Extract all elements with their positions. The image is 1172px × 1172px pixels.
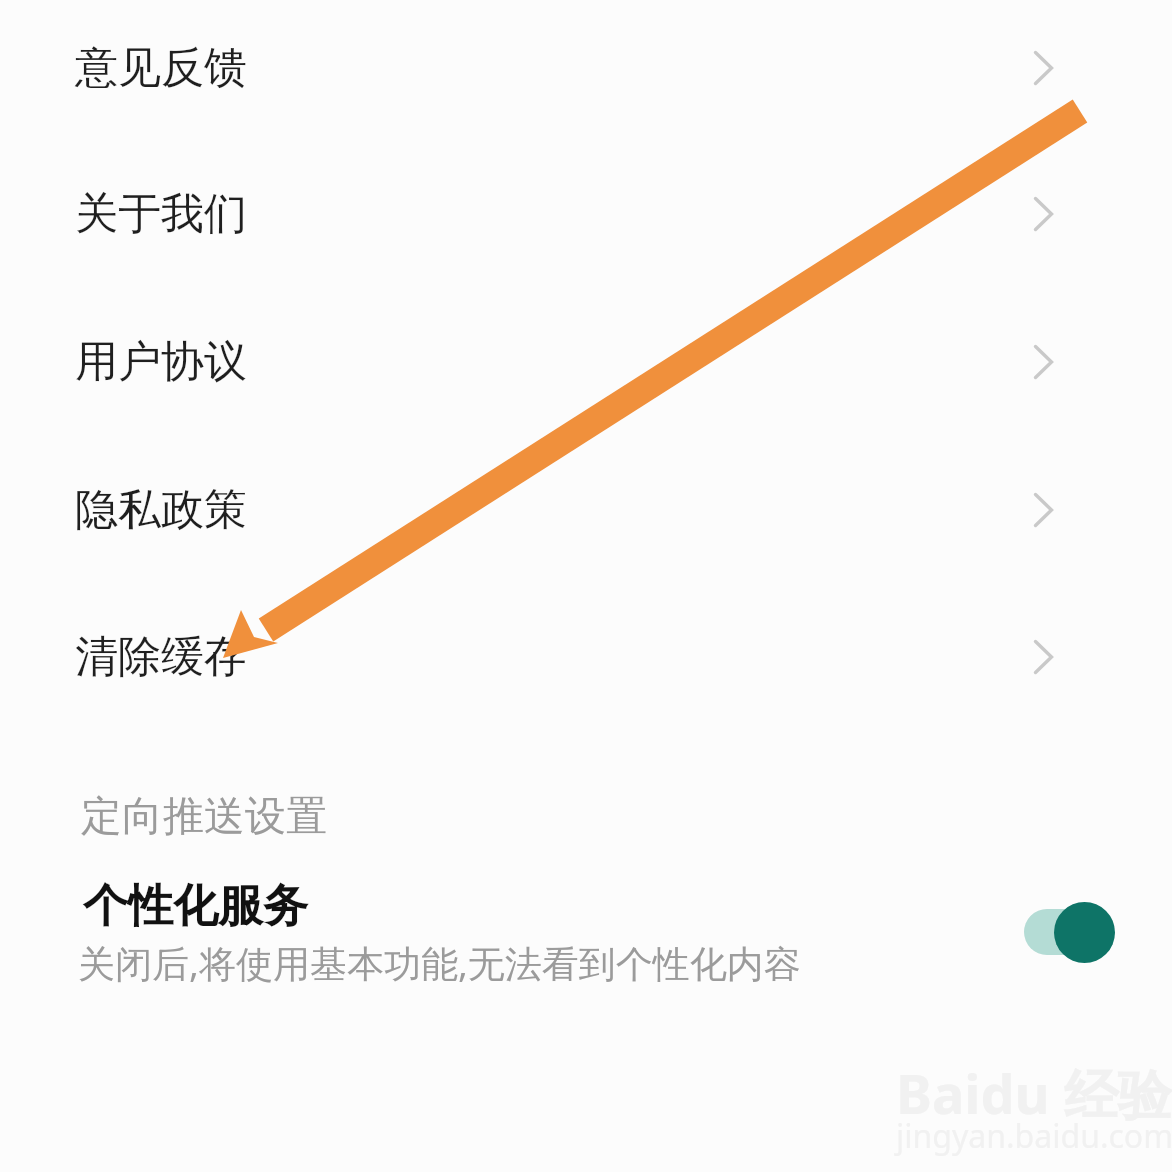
staticText: 隐私政策 [75, 483, 247, 537]
staticText: 个性化服务 [83, 878, 308, 935]
staticText: 关于我们 [75, 187, 247, 241]
staticText: 用户协议 [75, 335, 247, 389]
staticText: Baidu 经验 [896, 1056, 1172, 1130]
staticText: 关闭后,将使用基本功能,无法看到个性化内容 [78, 937, 801, 988]
button[interactable]: 个性化服务 [0, 862, 1172, 1002]
button[interactable]: 用户协议 [0, 289, 1172, 435]
staticText: 意见反馈 [75, 41, 247, 95]
staticText: 清除缓存 [75, 630, 247, 684]
button[interactable]: 隐私政策 [0, 437, 1172, 583]
button[interactable]: 个性化服务开关 [1021, 899, 1118, 965]
button[interactable]: 关于我们 [0, 141, 1172, 287]
button[interactable]: 意见反馈 [0, 0, 1172, 141]
staticText: jingyan.baidu.com [896, 1114, 1172, 1158]
button[interactable]: 清除缓存 [0, 584, 1172, 730]
staticText: 定向推送设置 [81, 791, 327, 843]
